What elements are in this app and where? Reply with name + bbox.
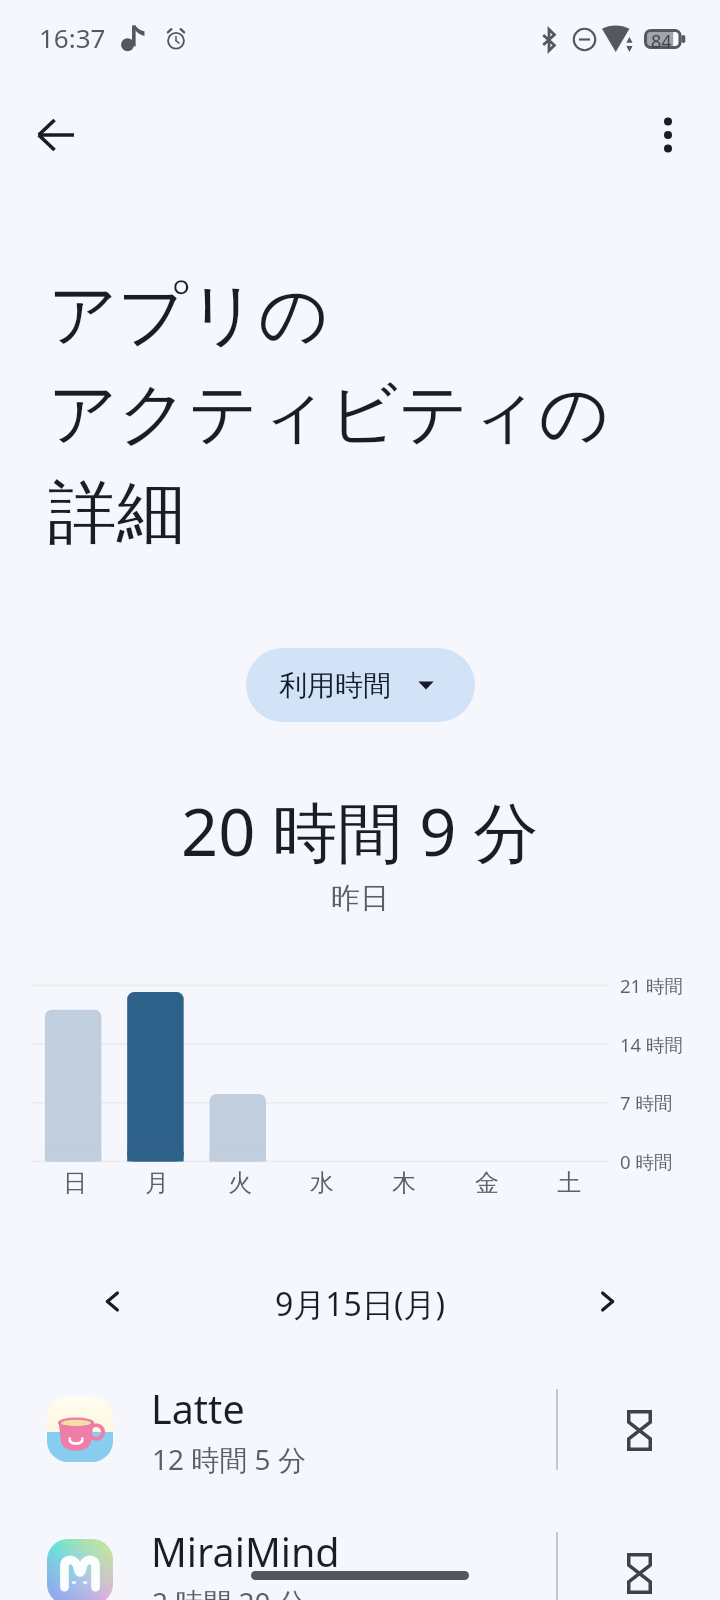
staticText: 2 時間 20 分 [152, 1583, 306, 1600]
staticText: 昨日 [331, 880, 389, 917]
button[interactable]: Previous day [84, 1273, 140, 1329]
staticText: 利用時間 [279, 668, 391, 703]
staticText: 金 [475, 1168, 499, 1198]
staticText: MiraiMind [151, 1525, 340, 1579]
staticText: 木 [392, 1168, 416, 1198]
staticText: 日 [63, 1168, 87, 1198]
staticText: 7 時間 [620, 1090, 673, 1115]
staticText: 20 時間 9 分 [181, 787, 539, 876]
staticText: 14 時間 [620, 1032, 683, 1057]
staticText: アプリの アクティビティの 詳細 [48, 272, 609, 557]
staticText: 月 [145, 1168, 169, 1198]
staticText: 水 [310, 1168, 334, 1198]
button[interactable]: App timer [609, 1382, 669, 1478]
staticText: 21 時間 [620, 973, 683, 998]
staticText: 0 時間 [620, 1149, 673, 1174]
button[interactable]: Back [28, 107, 84, 163]
staticText: 12 時間 5 分 [152, 1440, 306, 1478]
staticText: 9月15日(月) [275, 1282, 446, 1326]
staticText: 84 [651, 29, 672, 49]
staticText: Latte [151, 1382, 245, 1436]
button[interactable] [0, 1378, 720, 1521]
button[interactable] [0, 1521, 720, 1600]
button[interactable]: Next day [580, 1273, 636, 1329]
staticText: 土 [557, 1168, 581, 1198]
staticText: 火 [228, 1168, 252, 1198]
button[interactable]: App timer [609, 1525, 669, 1600]
button[interactable]: 利用時間 [246, 648, 475, 722]
staticText: 16:37 [39, 20, 106, 55]
button[interactable]: More options [640, 107, 696, 163]
